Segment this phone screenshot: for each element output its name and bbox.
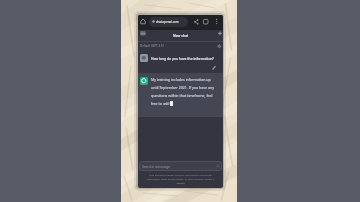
staticText: chat.openai.com <box>156 20 179 24</box>
staticText: Send a message <box>142 164 171 169</box>
button[interactable] <box>203 19 209 25</box>
button[interactable]: Send a message <box>139 161 222 171</box>
button[interactable] <box>194 19 199 26</box>
staticText: Version <box>138 181 223 184</box>
staticText: information about people, places, or fac… <box>138 177 223 180</box>
button[interactable]: chat.openai.com <box>149 17 188 27</box>
button[interactable] <box>212 65 217 70</box>
button[interactable]: Default (GPT-3.5) <box>138 41 223 51</box>
staticText: Free Research Preview. ChatGPT may produ… <box>138 173 223 176</box>
staticText: free to ask! <box>151 101 170 106</box>
button[interactable] <box>140 31 146 36</box>
staticText: until September 2021. If you have any <box>151 85 215 90</box>
staticText: Default (GPT-3.5) <box>140 44 164 48</box>
staticText: How long do you have the information? <box>151 56 214 61</box>
button[interactable] <box>215 18 219 26</box>
button[interactable] <box>140 18 146 25</box>
staticText: questions within that timeframe, feel <box>151 93 213 98</box>
button[interactable] <box>218 31 223 36</box>
staticText: My training includes information up <box>151 77 211 82</box>
staticText: New chat <box>173 33 189 38</box>
